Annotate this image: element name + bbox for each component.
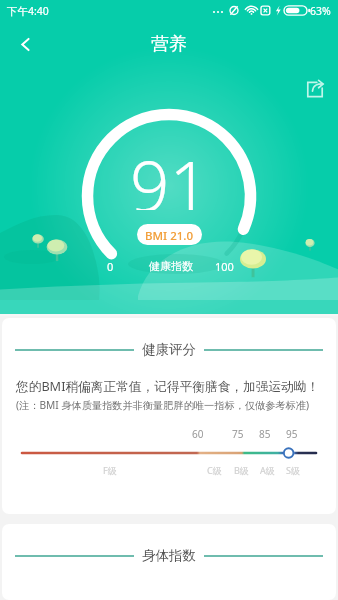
staticText: S级 (286, 464, 300, 476)
staticText: 100 (215, 259, 234, 274)
staticText: B级 (234, 464, 249, 476)
staticText: 营养 (151, 33, 187, 56)
staticText: 身体指数 (142, 547, 196, 564)
staticText: 85 (259, 427, 271, 441)
button[interactable]: Back (6, 25, 44, 63)
staticText: A级 (260, 464, 275, 476)
staticText: 您的BMI稍偏离正常值，记得平衡膳食，加强运动呦！ (16, 377, 320, 394)
staticText: 75 (232, 427, 244, 441)
staticText: C级 (207, 464, 222, 476)
staticText: 健康指数 (149, 259, 193, 273)
staticText: 95 (286, 427, 298, 441)
button[interactable]: Share (296, 70, 334, 108)
staticText: 91 (130, 138, 209, 210)
staticText: 63% (310, 4, 331, 18)
staticText: 60 (192, 427, 204, 441)
staticText: 0 (107, 259, 114, 274)
staticText: F级 (103, 464, 117, 476)
staticText: 下午4:40 (7, 4, 49, 18)
staticText: BMI 21.0 (145, 228, 194, 241)
staticText: 健康评分 (142, 341, 196, 358)
staticText: (注：BMI 身体质量指数并非衡量肥胖的唯一指标，仅做参考标准) (16, 398, 309, 412)
